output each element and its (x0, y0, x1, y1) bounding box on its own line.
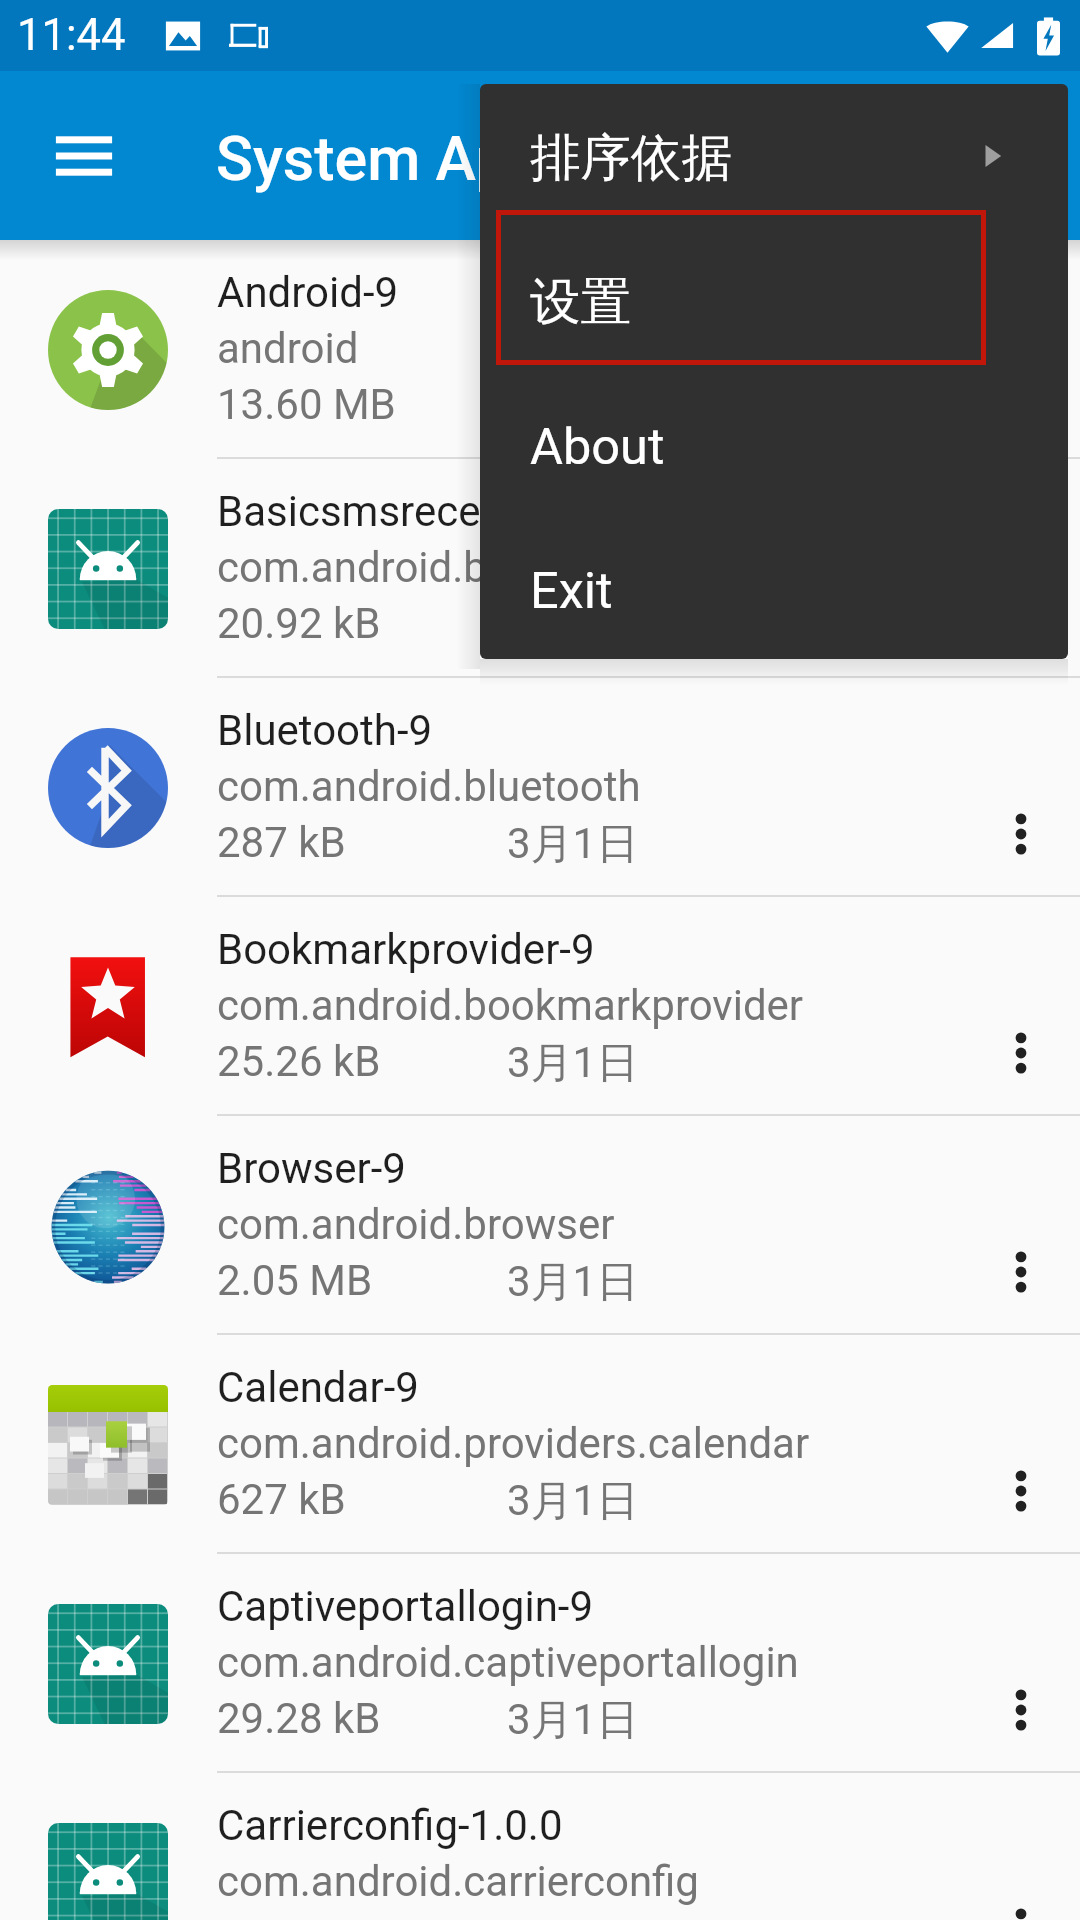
staticText: Captiveportallogin-9 (217, 1582, 594, 1631)
button[interactable]: Exit (480, 516, 1068, 659)
button[interactable]: More options (977, 1009, 1065, 1097)
staticText: com.android.providers.calendar (217, 1419, 810, 1468)
staticText: 627 kB (217, 1475, 346, 1524)
button[interactable]: Bookmarkprovider-9 (0, 897, 1080, 1116)
staticText: com.android.basicsmsreceiver (217, 543, 791, 592)
staticText: Calendar-9 (217, 1363, 419, 1412)
staticText: com.android.bookmarkprovider (217, 981, 804, 1030)
staticText: com.android.browser (217, 1200, 615, 1249)
staticText: Bookmarkprovider-9 (217, 925, 595, 974)
button[interactable]: Open navigation drawer (40, 112, 128, 200)
button[interactable]: More options (977, 1447, 1065, 1535)
button[interactable]: More options (977, 1885, 1065, 1920)
button[interactable]: More options (977, 1228, 1065, 1316)
staticText: System Apps (216, 123, 576, 194)
staticText: 设置 (530, 270, 631, 334)
staticText: Bluetooth-9 (217, 706, 433, 755)
button[interactable]: Captiveportallogin-9 (0, 1554, 1080, 1773)
button[interactable]: More options (977, 352, 1065, 440)
staticText: 2.05 MB (217, 1256, 373, 1305)
staticText: Exit (530, 561, 613, 620)
staticText: 11:44 (17, 10, 126, 61)
button[interactable]: Browser-9 (0, 1116, 1080, 1335)
staticText: com.android.carrierconfig (217, 1857, 699, 1906)
staticText: Carrierconfig-1.0.0 (217, 1801, 563, 1850)
staticText: About (530, 417, 665, 476)
button[interactable]: Bluetooth-9 (0, 678, 1080, 897)
staticText: 排序依据 (530, 126, 732, 190)
button[interactable]: More options (977, 1666, 1065, 1754)
staticText: android (217, 324, 359, 373)
staticText: 29.28 kB (217, 1694, 381, 1743)
staticText: 3月1日 (507, 1475, 639, 1528)
staticText: 3月1日 (507, 1037, 639, 1090)
button[interactable]: Carrierconfig-1.0.0 (0, 1773, 1080, 1920)
staticText: com.android.bluetooth (217, 762, 641, 811)
button[interactable]: 设置 (480, 228, 1068, 372)
button[interactable]: 排序依据 (480, 84, 1068, 228)
staticText: Android-9 (217, 268, 399, 317)
staticText: 3月1日 (507, 1256, 639, 1309)
staticText: com.android.captiveportallogin (217, 1638, 799, 1687)
staticText: 20.92 kB (217, 599, 381, 648)
staticText: Basicsmsreceiver-9 (217, 487, 583, 536)
staticText: 3月1日 (507, 1694, 639, 1747)
staticText: 13.60 MB (217, 380, 396, 429)
staticText: 287 kB (217, 818, 346, 867)
button[interactable]: More options (977, 790, 1065, 878)
staticText: 3月1日 (507, 818, 639, 871)
button[interactable]: Android-9 (0, 240, 1080, 459)
button[interactable]: About (480, 372, 1068, 516)
button[interactable]: Basicsmsreceiver-9 (0, 459, 1080, 678)
button[interactable]: Calendar-9 (0, 1335, 1080, 1554)
staticText: 25.26 kB (217, 1037, 381, 1086)
staticText: Browser-9 (217, 1144, 406, 1193)
